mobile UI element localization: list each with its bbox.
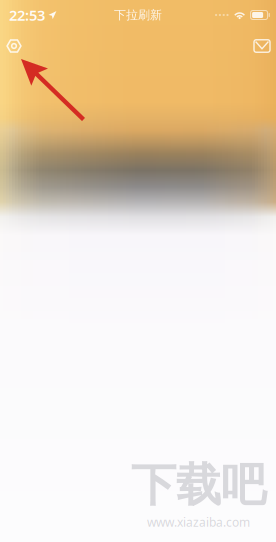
staticText: 下拉刷新	[114, 8, 162, 22]
staticText: 22:53	[9, 5, 45, 25]
staticText: 下载吧	[131, 457, 266, 513]
staticText: www.xiazaiba.com	[147, 514, 250, 530]
button[interactable]: Settings	[0, 32, 28, 60]
button[interactable]: Messages	[248, 32, 276, 60]
